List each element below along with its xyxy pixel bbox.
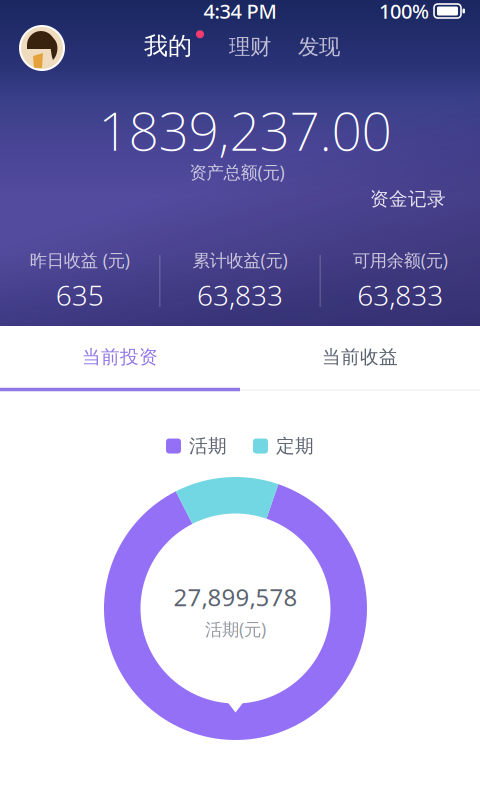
staticText: 定期 (276, 434, 314, 457)
button[interactable]: 当前投资 (0, 326, 240, 387)
staticText: 资产总额(元) (189, 160, 284, 183)
button[interactable]: Profile (20, 26, 64, 70)
staticText: 4:34 PM (203, 0, 276, 24)
staticText: 635 (56, 276, 104, 314)
button[interactable]: 当前收益 (240, 326, 480, 387)
staticText: 100% (379, 0, 429, 24)
staticText: 累计收益(元) (192, 248, 287, 271)
staticText: 当前收益 (322, 345, 398, 368)
button[interactable]: 发现 (286, 22, 352, 72)
staticText: 63,833 (357, 276, 443, 314)
staticText: 我的 (144, 31, 192, 61)
staticText: 活期(元) (205, 617, 266, 640)
button[interactable]: 资金记录 (357, 179, 459, 218)
staticText: 活期 (189, 434, 227, 457)
staticText: 1839,237.00 (98, 95, 391, 165)
staticText: 发现 (298, 34, 340, 60)
staticText: 资金记录 (370, 187, 446, 210)
staticText: 当前投资 (82, 345, 158, 368)
staticText: 理财 (229, 34, 271, 60)
button[interactable]: 我的 (135, 20, 205, 72)
staticText: 63,833 (197, 276, 283, 314)
staticText: 可用余额(元) (353, 248, 448, 271)
staticText: 昨日收益 (元) (30, 248, 130, 271)
staticText: 27,899,578 (173, 581, 297, 613)
button[interactable]: 理财 (217, 22, 283, 72)
